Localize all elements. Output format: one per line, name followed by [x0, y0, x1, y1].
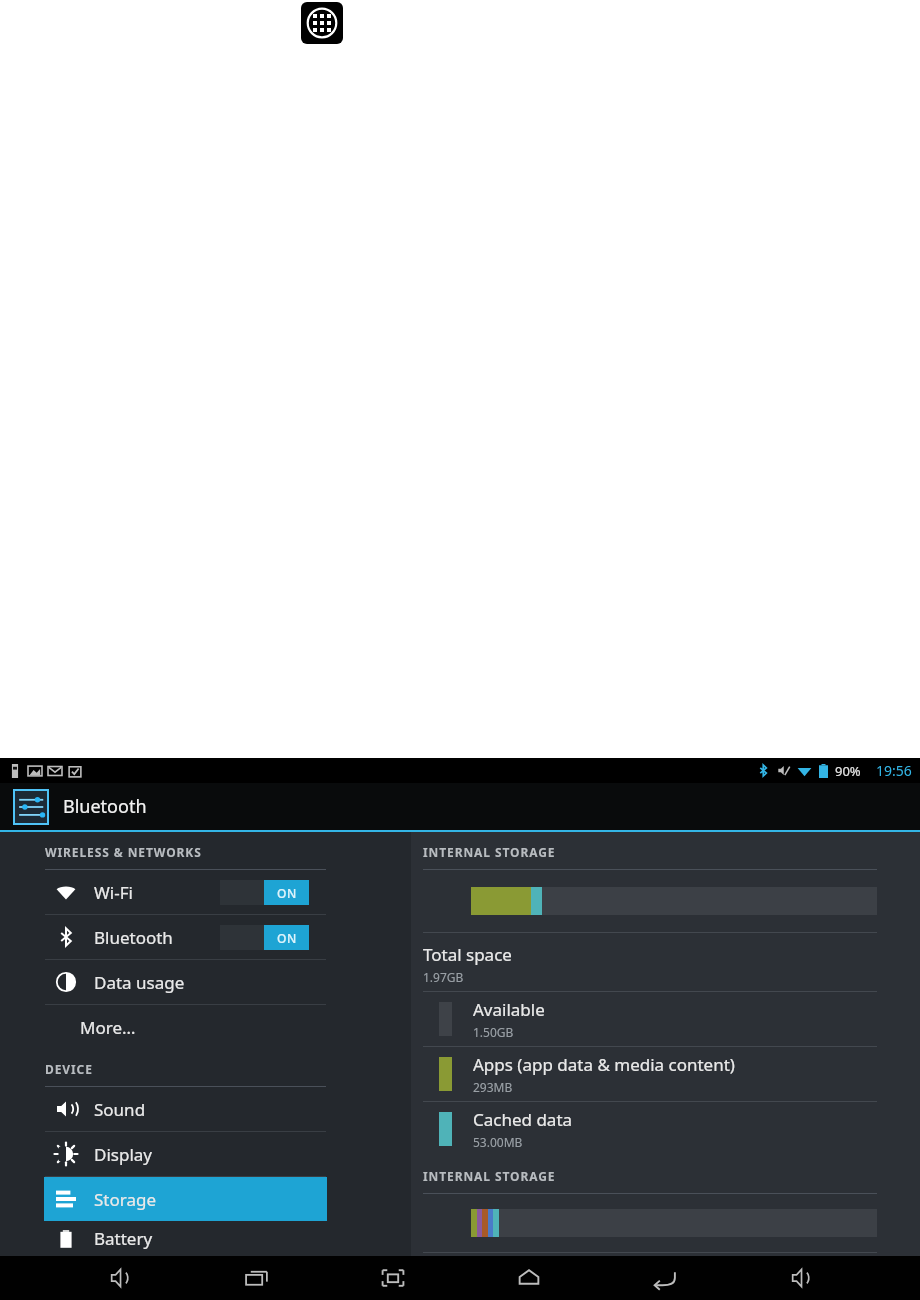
button[interactable]: Bluetooth [0, 915, 411, 959]
button[interactable]: More… [0, 1005, 411, 1049]
button[interactable]: Wi-Fi [0, 870, 411, 914]
button[interactable]: Cached data [423, 1102, 877, 1156]
staticText: 90% [835, 762, 861, 780]
staticText: INTERNAL STORAGE [423, 844, 556, 860]
staticText: ON [277, 885, 297, 901]
staticText: Apps (app data & media content) [473, 1053, 735, 1076]
button[interactable]: Sound [0, 1087, 411, 1131]
button[interactable]: Recent apps [228, 1256, 286, 1300]
staticText: Total space [423, 943, 512, 966]
staticText: 1.97GB [423, 969, 464, 985]
staticText: 19:56 [876, 761, 912, 780]
button[interactable]: Volume up [772, 1256, 830, 1300]
button[interactable]: Back [636, 1256, 694, 1300]
button[interactable]: Storage [44, 1177, 327, 1221]
button[interactable]: Apps (app data & media content) [423, 1047, 877, 1101]
staticText: Battery [94, 1227, 153, 1250]
staticText: 293MB [473, 1079, 513, 1095]
button[interactable]: Battery [0, 1221, 411, 1256]
staticText: Wi-Fi [94, 881, 133, 904]
staticText: 1.50GB [473, 1024, 514, 1040]
staticText: Bluetooth [63, 794, 147, 819]
staticText: WIRELESS & NETWORKS [45, 844, 202, 860]
staticText: Bluetooth [94, 926, 173, 949]
staticText: Available [473, 998, 545, 1021]
button[interactable]: Display [0, 1132, 411, 1176]
button[interactable]: All apps [301, 2, 343, 44]
button[interactable]: Screenshot [364, 1256, 422, 1300]
staticText: Display [94, 1143, 152, 1166]
button[interactable]: Available [423, 992, 877, 1046]
button[interactable]: Total space [423, 933, 877, 991]
staticText: INTERNAL STORAGE [423, 1168, 556, 1184]
button[interactable]: Data usage [0, 960, 411, 1004]
button[interactable]: Home [500, 1256, 558, 1300]
staticText: Data usage [94, 971, 185, 994]
staticText: 53.00MB [473, 1134, 523, 1150]
staticText: ON [277, 930, 297, 946]
button[interactable]: Volume down [91, 1256, 149, 1300]
staticText: More… [80, 1016, 136, 1039]
staticText: DEVICE [45, 1061, 93, 1077]
staticText: Cached data [473, 1108, 573, 1131]
staticText: Storage [94, 1188, 157, 1211]
staticText: Sound [94, 1098, 146, 1121]
button[interactable]: Bluetooth [0, 783, 920, 830]
